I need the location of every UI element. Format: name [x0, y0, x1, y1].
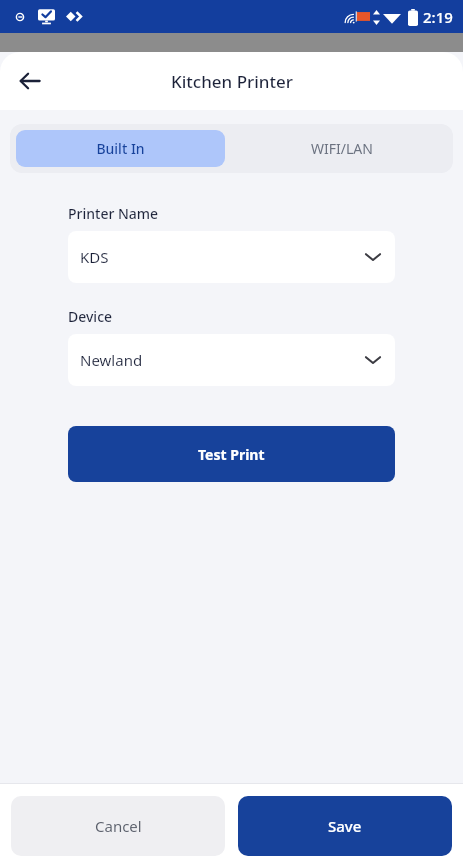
staticText: Printer Name: [68, 204, 159, 223]
button[interactable]: Built In: [16, 130, 225, 167]
staticText: Test Print: [198, 445, 265, 464]
staticText: Kitchen Printer: [171, 70, 293, 93]
button[interactable]: Cancel: [11, 796, 225, 856]
button[interactable]: Newland: [68, 334, 395, 386]
button[interactable]: Back: [10, 61, 50, 101]
staticText: KDS: [80, 247, 109, 267]
staticText: Cancel: [95, 816, 142, 836]
button[interactable]: WIFI/LAN: [237, 130, 447, 167]
staticText: 2:19: [423, 7, 453, 27]
button[interactable]: KDS: [68, 231, 395, 283]
button[interactable]: Save: [238, 796, 452, 856]
staticText: Device: [68, 307, 113, 326]
staticText: WIFI/LAN: [311, 139, 373, 158]
button[interactable]: Test Print: [68, 426, 395, 482]
staticText: Newland: [80, 350, 143, 370]
staticText: Built In: [96, 139, 145, 158]
staticText: Save: [328, 816, 362, 836]
